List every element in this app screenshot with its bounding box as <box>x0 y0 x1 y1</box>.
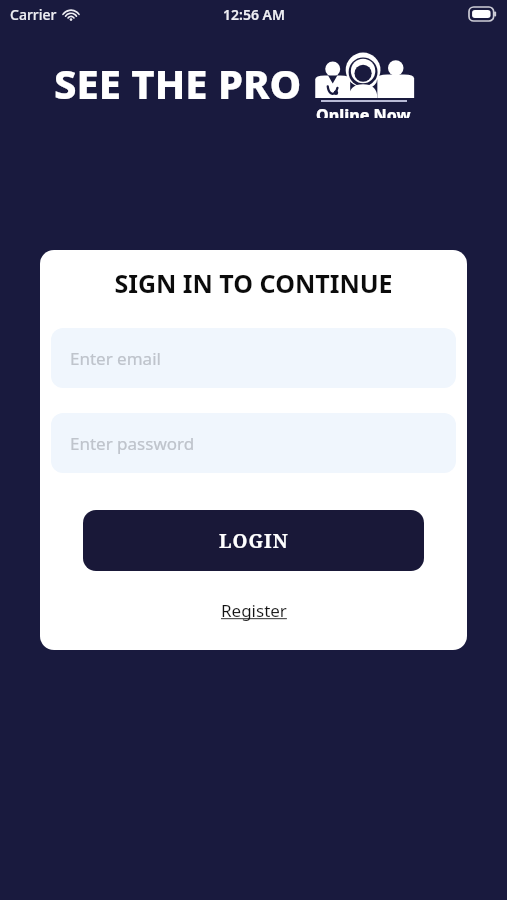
staticText: SIGN IN TO CONTINUE <box>40 266 467 300</box>
staticText: LOGIN <box>219 528 289 554</box>
button[interactable]: Register <box>215 597 293 624</box>
staticText: SEE THE PRO <box>54 56 302 110</box>
staticText: 12:56 AM <box>223 5 285 24</box>
button[interactable]: Enter password <box>51 413 456 473</box>
staticText: Enter password <box>70 432 195 455</box>
staticText: Enter email <box>70 347 161 370</box>
button[interactable]: LOGIN <box>83 510 424 571</box>
staticText: Online Now <box>316 104 411 118</box>
staticText: Carrier <box>10 5 57 24</box>
button[interactable]: Enter email <box>51 328 456 388</box>
staticText: Register <box>221 599 287 622</box>
